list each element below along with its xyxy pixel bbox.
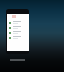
button[interactable] [7, 30, 29, 35]
button[interactable] [7, 20, 29, 25]
button[interactable] [7, 25, 29, 30]
button[interactable] [7, 35, 29, 40]
